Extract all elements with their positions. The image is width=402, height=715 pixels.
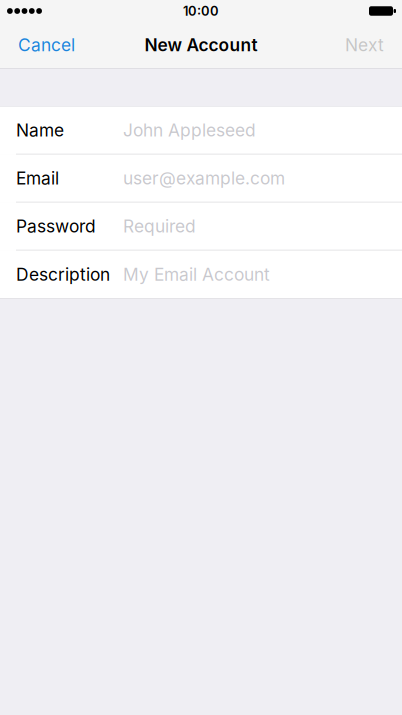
staticText: Cancel xyxy=(18,34,75,55)
staticText: Name xyxy=(16,120,64,141)
staticText: John Appleseed xyxy=(123,120,256,141)
button[interactable]: Email xyxy=(0,155,402,203)
button[interactable]: Cancel xyxy=(14,26,79,63)
button[interactable]: Description xyxy=(0,251,402,298)
button[interactable]: Next xyxy=(341,26,388,63)
staticText: user@example.com xyxy=(123,168,285,189)
staticText: 10:00 xyxy=(183,3,219,19)
staticText: Next xyxy=(345,34,384,55)
staticText: Email xyxy=(16,168,59,189)
button[interactable]: Password xyxy=(0,203,402,251)
button[interactable]: Name xyxy=(0,107,402,155)
staticText: Description xyxy=(16,264,110,285)
staticText: Password xyxy=(16,216,96,237)
staticText: New Account xyxy=(144,34,257,55)
staticText: My Email Account xyxy=(123,264,270,285)
staticText: Required xyxy=(123,216,196,237)
